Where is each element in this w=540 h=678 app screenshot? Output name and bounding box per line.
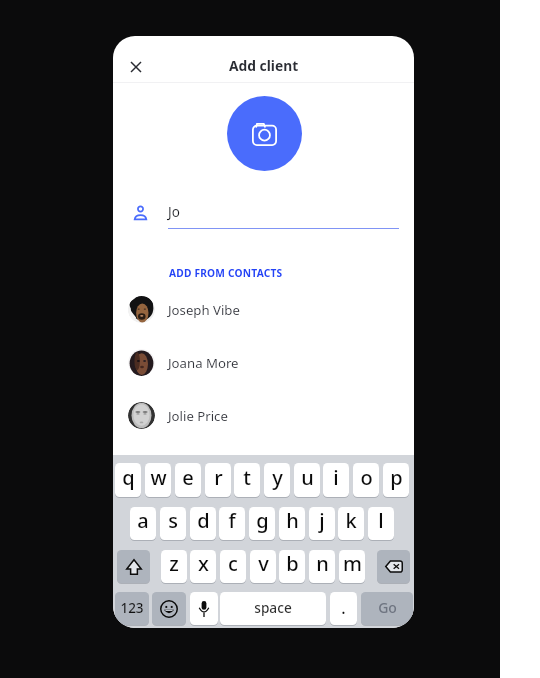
staticText: n	[316, 550, 329, 577]
button[interactable]: Emoji	[152, 592, 186, 625]
button[interactable]: k	[338, 507, 364, 540]
staticText: g	[256, 507, 269, 534]
staticText: b	[286, 550, 299, 577]
button[interactable]: Backspace	[377, 550, 410, 583]
button[interactable]: ADD FROM CONTACTS	[169, 266, 283, 280]
button[interactable]: a	[130, 507, 156, 540]
staticText: Add client	[229, 56, 299, 75]
staticText: c	[228, 550, 238, 577]
button[interactable]: g	[249, 507, 275, 540]
button[interactable]: f	[219, 507, 245, 540]
staticText: e	[182, 464, 194, 491]
staticText: ADD FROM CONTACTS	[169, 266, 283, 280]
staticText: t	[243, 464, 251, 491]
staticText: q	[122, 464, 135, 491]
staticText: Joana More	[168, 354, 239, 372]
button[interactable]: Go	[361, 592, 413, 625]
button[interactable]: p	[383, 463, 409, 497]
staticText: u	[301, 464, 314, 491]
staticText: y	[272, 464, 283, 491]
staticText: s	[168, 507, 178, 534]
staticText: m	[343, 550, 362, 577]
staticText: a	[137, 507, 149, 534]
button[interactable]: 123	[115, 592, 149, 625]
button[interactable]: q	[115, 463, 141, 497]
staticText: f	[228, 507, 236, 534]
button[interactable]: l	[368, 507, 394, 540]
button[interactable]: d	[190, 507, 216, 540]
button[interactable]: u	[294, 463, 320, 497]
staticText: k	[345, 507, 357, 534]
staticText: Go	[378, 598, 397, 617]
staticText: l	[378, 507, 384, 534]
staticText: Jo	[168, 203, 180, 221]
staticText: h	[286, 507, 299, 534]
button[interactable]: x	[190, 550, 216, 583]
staticText: r	[214, 464, 223, 491]
button[interactable]: Voice input	[190, 592, 218, 625]
button[interactable]: i	[323, 463, 349, 497]
button[interactable]: Shift	[117, 550, 150, 583]
staticText: i	[333, 464, 339, 491]
button[interactable]: m	[339, 550, 365, 583]
staticText: space	[254, 598, 292, 617]
staticText: Jolie Price	[168, 407, 228, 425]
button[interactable]: Joana More	[113, 336, 414, 389]
button[interactable]: n	[309, 550, 335, 583]
staticText: .	[341, 597, 346, 619]
button[interactable]: t	[234, 463, 260, 497]
staticText: v	[258, 550, 269, 577]
button[interactable]: w	[145, 463, 171, 497]
button[interactable]: s	[160, 507, 186, 540]
button[interactable]: r	[205, 463, 231, 497]
button[interactable]: Joseph Vibe	[113, 283, 414, 336]
button[interactable]: v	[250, 550, 276, 583]
button[interactable]: j	[309, 507, 335, 540]
staticText: j	[319, 507, 325, 534]
staticText: d	[197, 507, 210, 534]
staticText: z	[169, 550, 179, 577]
button[interactable]: Close	[118, 49, 154, 85]
staticText: 123	[120, 599, 144, 617]
button[interactable]: space	[220, 592, 326, 625]
staticText: p	[390, 464, 403, 491]
button[interactable]: o	[353, 463, 379, 497]
button[interactable]: Jolie Price	[113, 389, 414, 442]
button[interactable]: e	[175, 463, 201, 497]
button[interactable]: h	[279, 507, 305, 540]
button[interactable]: b	[279, 550, 305, 583]
button[interactable]: c	[220, 550, 246, 583]
button[interactable]: .	[330, 592, 357, 625]
staticText: Joseph Vibe	[168, 301, 240, 319]
button[interactable]: z	[161, 550, 187, 583]
staticText: w	[150, 464, 167, 491]
staticText: x	[198, 550, 209, 577]
staticText: o	[360, 464, 373, 491]
button[interactable]: Add photo	[227, 96, 302, 171]
button[interactable]: y	[264, 463, 290, 497]
